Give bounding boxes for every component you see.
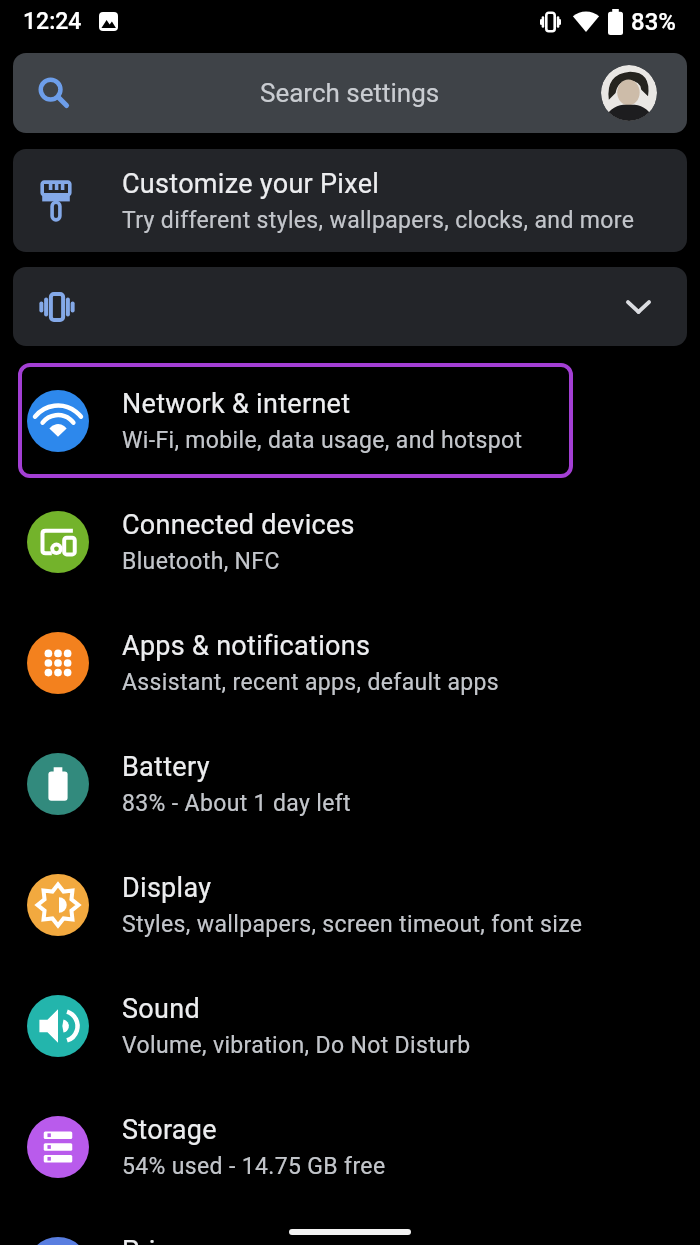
button[interactable]: Display (0, 844, 700, 965)
staticText: Volume, vibration, Do Not Disturb (122, 1032, 471, 1059)
staticText: Styles, wallpapers, screen timeout, font… (122, 911, 583, 938)
staticText: Connected devices (122, 509, 355, 541)
button[interactable]: Connected devices (0, 481, 700, 602)
staticText: Battery (122, 751, 210, 783)
button[interactable]: Customize your Pixel (13, 149, 687, 252)
staticText: Apps & notifications (122, 630, 371, 662)
staticText: Assistant, recent apps, default apps (122, 669, 500, 696)
staticText: Privacy (122, 1235, 212, 1245)
staticText: 54% used - 14.75 GB free (122, 1153, 386, 1180)
button[interactable]: Network & internet (0, 360, 700, 481)
staticText: Wi-Fi, mobile, data usage, and hotspot (122, 427, 523, 454)
staticText: Network & internet (122, 388, 351, 420)
staticText: 12:24 (23, 8, 82, 35)
staticText: Try different styles, wallpapers, clocks… (122, 207, 635, 234)
staticText: Storage (122, 1114, 217, 1146)
button[interactable]: Battery (0, 723, 700, 844)
staticText: 83% (631, 8, 676, 36)
staticText: Sound (122, 993, 200, 1025)
button[interactable]: Privacy (0, 1207, 700, 1245)
staticText: 83% - About 1 day left (122, 790, 351, 817)
button[interactable]: Apps & notifications (0, 602, 700, 723)
button[interactable]: Sound (0, 965, 700, 1086)
button[interactable] (13, 267, 687, 346)
staticText: Customize your Pixel (122, 168, 380, 200)
staticText: Bluetooth, NFC (122, 548, 280, 575)
staticText: Search settings (260, 78, 440, 108)
button[interactable]: Search settings (13, 53, 687, 133)
staticText: Display (122, 872, 212, 904)
button[interactable]: Storage (0, 1086, 700, 1207)
